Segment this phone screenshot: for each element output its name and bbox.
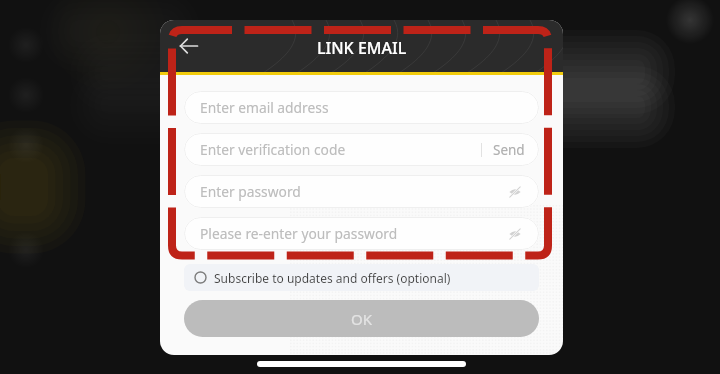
staticText: Send (493, 141, 525, 159)
button[interactable]: Enter email address (184, 91, 539, 124)
staticText: Enter email address (200, 98, 329, 117)
staticText: Enter password (200, 182, 301, 201)
staticText: LINK EMAIL (317, 37, 407, 59)
staticText: Enter verification code (200, 140, 346, 159)
button[interactable]: Enter password (184, 175, 539, 208)
staticText: OK (351, 309, 373, 329)
staticText: Please re-enter your password (200, 224, 398, 243)
staticText: Subscribe to updates and offers (optiona… (214, 270, 451, 286)
button[interactable]: Show password (505, 182, 525, 202)
button[interactable]: Enter verification code (184, 133, 539, 166)
button[interactable]: Subscribe to updates and offers (optiona… (184, 264, 539, 291)
button[interactable]: Show password (505, 224, 525, 244)
button[interactable]: Send (481, 133, 539, 166)
button[interactable]: Back (168, 25, 210, 67)
button[interactable]: OK (184, 300, 539, 337)
button[interactable]: Please re-enter your password (184, 217, 539, 250)
